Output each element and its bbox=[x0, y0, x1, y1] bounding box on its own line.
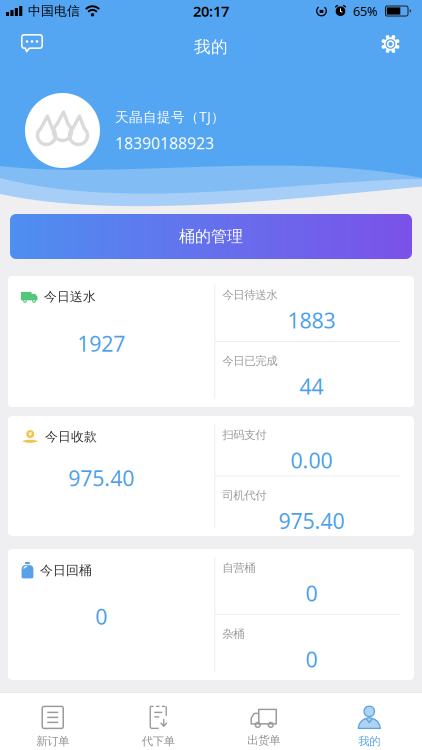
staticText: 扫码支付 bbox=[222, 428, 266, 442]
staticText: 出货单 bbox=[247, 733, 280, 747]
staticText: 我的 bbox=[358, 734, 380, 748]
staticText: 自营桶 bbox=[222, 561, 255, 575]
staticText: 18390188923 bbox=[115, 133, 214, 153]
button[interactable]: 设置 bbox=[381, 37, 422, 56]
staticText: 65% bbox=[353, 3, 378, 19]
button[interactable]: 我的 bbox=[316, 694, 422, 748]
staticText: 0 bbox=[95, 602, 107, 631]
staticText: 1883 bbox=[288, 306, 336, 334]
staticText: 天晶自提号（TJ） bbox=[115, 107, 225, 126]
staticText: 0 bbox=[306, 645, 318, 673]
button[interactable]: 消息 bbox=[0, 38, 43, 56]
staticText: 今日回桶 bbox=[40, 563, 92, 578]
staticText: 1927 bbox=[77, 329, 125, 358]
staticText: 我的 bbox=[194, 37, 228, 57]
staticText: 今日送水 bbox=[44, 289, 96, 305]
staticText: 司机代付 bbox=[222, 488, 266, 502]
staticText: 44 bbox=[300, 372, 324, 400]
button[interactable]: 桶的管理 bbox=[0, 214, 422, 259]
staticText: 今日收款 bbox=[45, 429, 97, 445]
staticText: 代下单 bbox=[142, 734, 175, 748]
staticText: 0.00 bbox=[291, 446, 333, 474]
staticText: 今日已完成 bbox=[222, 354, 277, 368]
staticText: 975.40 bbox=[279, 506, 345, 535]
staticText: 975.40 bbox=[68, 464, 134, 492]
button[interactable]: 代下单 bbox=[105, 694, 211, 748]
staticText: 杂桶 bbox=[222, 627, 244, 641]
staticText: 0 bbox=[306, 579, 318, 607]
staticText: 桶的管理 bbox=[179, 227, 243, 246]
button[interactable]: 出货单 bbox=[211, 695, 316, 747]
staticText: 今日待送水 bbox=[222, 288, 277, 302]
button[interactable]: 新订单 bbox=[0, 694, 105, 748]
staticText: 20:17 bbox=[193, 1, 229, 21]
staticText: 新订单 bbox=[36, 734, 69, 748]
staticText: 中国电信 bbox=[28, 3, 80, 19]
